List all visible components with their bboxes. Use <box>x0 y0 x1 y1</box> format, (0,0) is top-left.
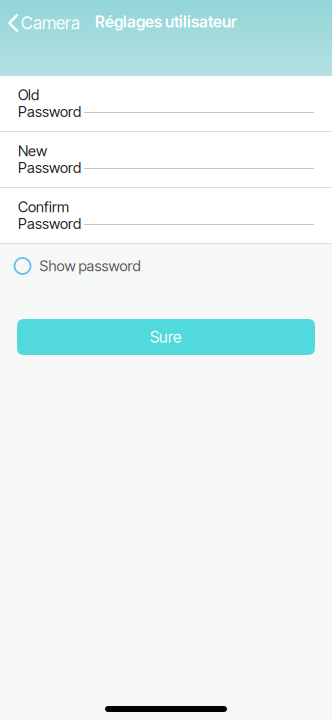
staticText: New <box>18 142 47 160</box>
staticText: Sure <box>150 327 182 347</box>
button[interactable]: Confirm <box>0 188 332 243</box>
button[interactable]: Camera <box>0 8 90 38</box>
staticText: Old <box>18 86 39 104</box>
button[interactable]: Show password <box>0 244 332 288</box>
staticText: Camera <box>21 12 80 33</box>
button[interactable]: Sure <box>17 319 315 355</box>
button[interactable]: Old <box>0 76 332 131</box>
staticText: Réglages utilisateur <box>95 12 237 31</box>
staticText: Confirm <box>18 198 69 216</box>
staticText: Password <box>18 103 81 120</box>
staticText: Password <box>18 159 81 176</box>
staticText: Password <box>18 215 81 232</box>
button[interactable]: New <box>0 132 332 187</box>
staticText: Show password <box>39 257 140 275</box>
